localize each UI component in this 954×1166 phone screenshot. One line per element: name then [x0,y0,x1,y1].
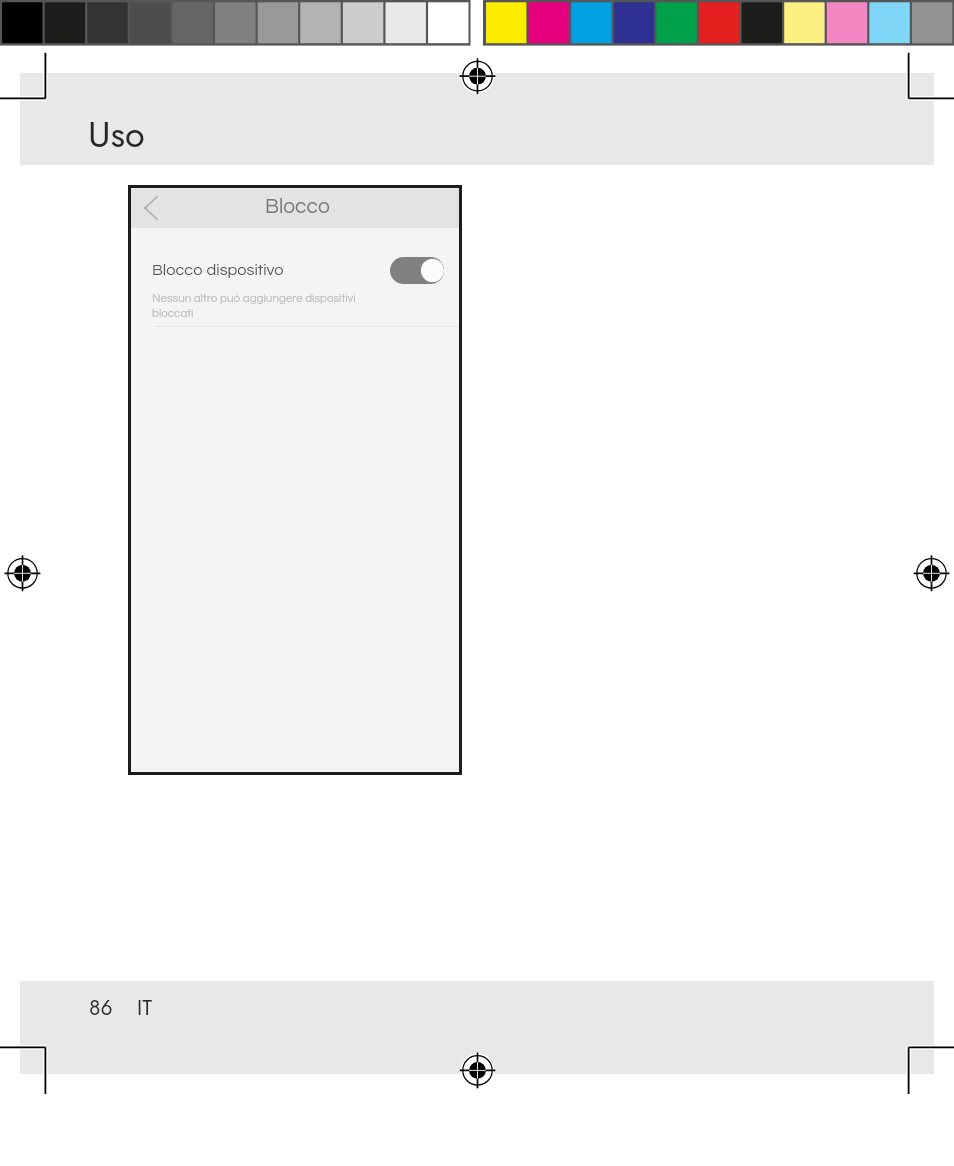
staticText: Nessun altro può aggiungere dispositivi … [152,292,356,319]
staticText: Blocco [265,196,330,218]
button[interactable]: Back [134,191,168,225]
button[interactable]: Blocco dispositivo [131,228,459,326]
staticText: Blocco dispositivo [152,262,284,279]
staticText: 86 [89,993,113,1023]
staticText: IT [137,993,152,1023]
staticText: Uso [88,108,145,160]
button[interactable]: Blocco dispositivo, attivo [390,257,444,284]
